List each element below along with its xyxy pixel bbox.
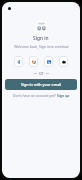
- staticText: Welcome back, Sign in to continue: [14, 44, 69, 49]
- button[interactable]: Sign in with Apple: [59, 56, 68, 67]
- staticText: Sign in: [33, 35, 49, 42]
- button[interactable]: Sign in with your email: [5, 79, 77, 90]
- staticText: Sign up: [57, 93, 70, 98]
- button[interactable]: Don't have an account yet?: [2, 93, 80, 98]
- staticText: Sign in with your email: [21, 82, 62, 87]
- staticText: Don't have an account yet?: [13, 93, 57, 98]
- button[interactable]: Sign in with Google: [29, 56, 38, 67]
- button[interactable]: Sign in with Twitter: [44, 56, 53, 67]
- staticText: or: [39, 70, 44, 76]
- button[interactable]: Sign in with Facebook: [14, 56, 23, 67]
